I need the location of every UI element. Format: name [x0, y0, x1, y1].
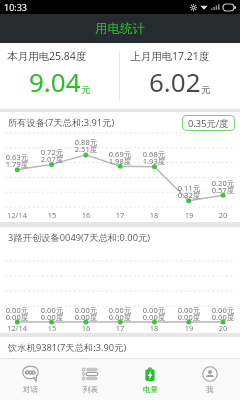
staticText: 0.00度	[71, 312, 101, 322]
staticText: 元	[201, 84, 211, 96]
staticText: 20	[208, 210, 238, 220]
staticText: 列表	[83, 385, 98, 394]
staticText: 0.63元	[2, 152, 32, 162]
staticText: 用电统计	[95, 21, 145, 37]
other: 电量	[142, 366, 158, 382]
other: 列表	[82, 366, 98, 382]
staticText: 0.32度	[174, 190, 204, 200]
staticText: 1.79度	[2, 159, 32, 169]
staticText: 本月用电25.84度	[7, 49, 87, 63]
staticText: 饮水机9381(7天总和:3.90元)	[8, 341, 127, 354]
staticText: 1.93度	[139, 156, 169, 166]
staticText: 0.00度	[2, 312, 32, 322]
staticText: 0.69元	[105, 149, 135, 159]
staticText: 0.72元	[37, 147, 67, 157]
staticText: 电量	[143, 385, 158, 394]
staticText: 我	[206, 385, 214, 394]
staticText: 0.00元	[105, 305, 135, 315]
button[interactable]: 本月用电25.84度	[0, 43, 119, 104]
staticText: 0.00元	[139, 305, 169, 315]
staticText: 0.00元	[71, 305, 101, 315]
staticText: 0.00元	[174, 305, 204, 315]
staticText: 0.00元	[208, 305, 238, 315]
staticText: 15	[37, 323, 67, 333]
staticText: 17	[105, 323, 135, 333]
staticText: 18	[139, 323, 169, 333]
staticText: 对话	[23, 385, 38, 394]
staticText: 15	[37, 210, 67, 220]
staticText: 0.00元	[37, 305, 67, 315]
staticText: 0.00度	[174, 312, 204, 322]
button[interactable]: 上月用电17.21度	[120, 43, 240, 104]
staticText: 6.02	[149, 64, 201, 99]
staticText: 0.00度	[139, 312, 169, 322]
staticText: 16	[71, 323, 101, 333]
staticText: 2.51度	[71, 144, 101, 154]
staticText: 0.88元	[71, 137, 101, 147]
staticText: 12/14	[2, 323, 32, 333]
staticText: 0.00度	[37, 312, 67, 322]
staticText: 17	[105, 210, 135, 220]
button[interactable]: 我	[180, 359, 240, 400]
other: 我	[202, 366, 218, 382]
staticText: 16	[71, 210, 101, 220]
staticText: 3路开创设备0049(7天总和:0.00元)	[8, 231, 151, 244]
staticText: 0.57度	[208, 185, 238, 195]
staticText: 0.00度	[208, 312, 238, 322]
staticText: 12/14	[2, 210, 32, 220]
staticText: 0.00元	[2, 305, 32, 315]
staticText: 所有设备(7天总和:3.91元)	[8, 116, 115, 129]
staticText: 1.98度	[105, 156, 135, 166]
button[interactable]: 0.35元/度	[182, 115, 235, 131]
staticText: 0.11元	[174, 183, 204, 193]
staticText: 19	[174, 210, 204, 220]
staticText: 18	[139, 210, 169, 220]
staticText: 2.07度	[37, 154, 67, 164]
button[interactable]: 电量	[120, 359, 180, 400]
staticText: 0.35元/度	[188, 117, 229, 130]
staticText: 上月用电17.21度	[130, 49, 210, 63]
staticText: 0.20元	[208, 178, 238, 188]
staticText: 元	[81, 84, 91, 96]
staticText: 9.04	[29, 64, 81, 99]
button[interactable]: 对话	[0, 359, 60, 400]
staticText: 20	[208, 323, 238, 333]
staticText: 0.68元	[139, 149, 169, 159]
button[interactable]: 用电统计	[0, 14, 240, 43]
button[interactable]: 列表	[60, 359, 120, 400]
other: 对话	[22, 365, 39, 382]
staticText: 0.00度	[105, 312, 135, 322]
staticText: 10:33	[4, 1, 28, 13]
staticText: 19	[174, 323, 204, 333]
